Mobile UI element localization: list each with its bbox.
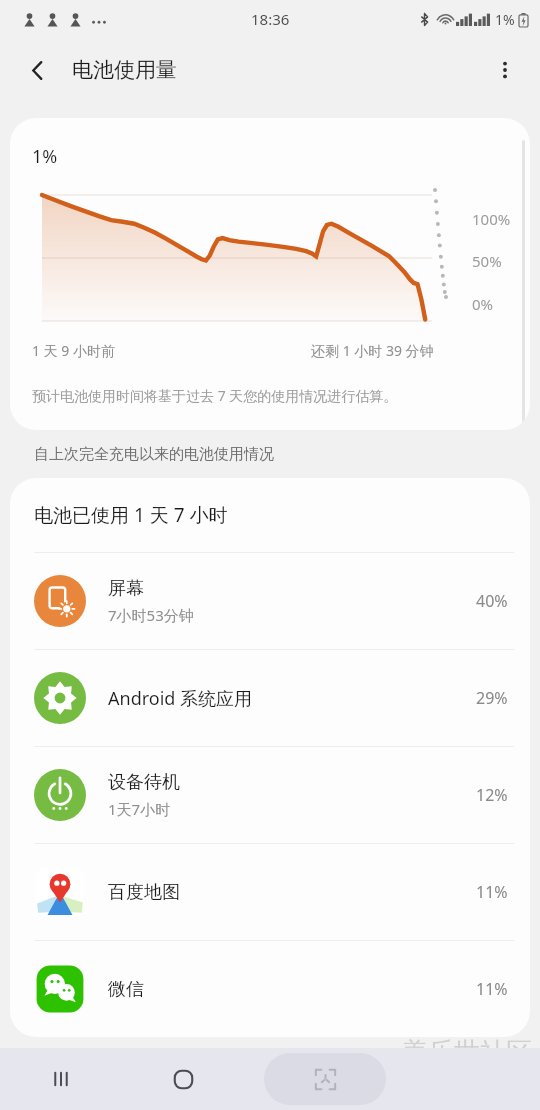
- button[interactable]: 最近任务: [0, 1048, 122, 1110]
- staticText: 1%: [32, 144, 58, 169]
- staticText: 微信: [108, 978, 144, 1001]
- staticText: 百度地图: [108, 881, 180, 904]
- button[interactable]: 1%: [10, 118, 530, 430]
- staticText: 100%: [472, 209, 511, 229]
- staticText: 12%: [476, 784, 508, 806]
- button[interactable]: 返回: [14, 47, 60, 93]
- staticText: 电池使用量: [72, 57, 177, 83]
- staticText: 50%: [472, 251, 502, 271]
- staticText: 屏幕: [108, 577, 144, 600]
- button[interactable]: 主屏幕: [122, 1048, 245, 1110]
- button[interactable]: 扫一扫: [264, 1053, 386, 1105]
- staticText: 预计电池使用时间将基于过去 7 天您的使用情况进行估算。: [32, 386, 398, 405]
- button[interactable]: Android 系统应用: [10, 650, 530, 746]
- button[interactable]: 屏幕: [10, 553, 530, 649]
- staticText: Android 系统应用: [108, 686, 253, 711]
- button[interactable]: 更多选项: [482, 47, 528, 93]
- staticText: 11%: [476, 881, 508, 903]
- button[interactable]: 设备待机: [10, 747, 530, 843]
- staticText: 自上次完全充电以来的电池使用情况: [34, 445, 274, 464]
- button[interactable]: 百度地图: [10, 844, 530, 940]
- staticText: 18:36: [251, 9, 290, 29]
- staticText: 29%: [476, 687, 508, 709]
- staticText: 1%: [495, 10, 515, 29]
- staticText: 设备待机: [108, 771, 180, 794]
- staticText: 11%: [476, 978, 508, 1000]
- staticText: 7小时53分钟: [108, 605, 194, 625]
- staticText: 盖乐世社区: [402, 1036, 532, 1069]
- staticText: 0%: [472, 294, 494, 314]
- staticText: 1 天 9 小时前: [32, 341, 115, 360]
- staticText: 还剩 1 小时 39 分钟: [311, 341, 434, 360]
- staticText: 1天7小时: [108, 799, 171, 819]
- staticText: 40%: [476, 590, 508, 612]
- staticText: 电池已使用 1 天 7 小时: [34, 502, 228, 528]
- button[interactable]: 微信: [10, 941, 530, 1037]
